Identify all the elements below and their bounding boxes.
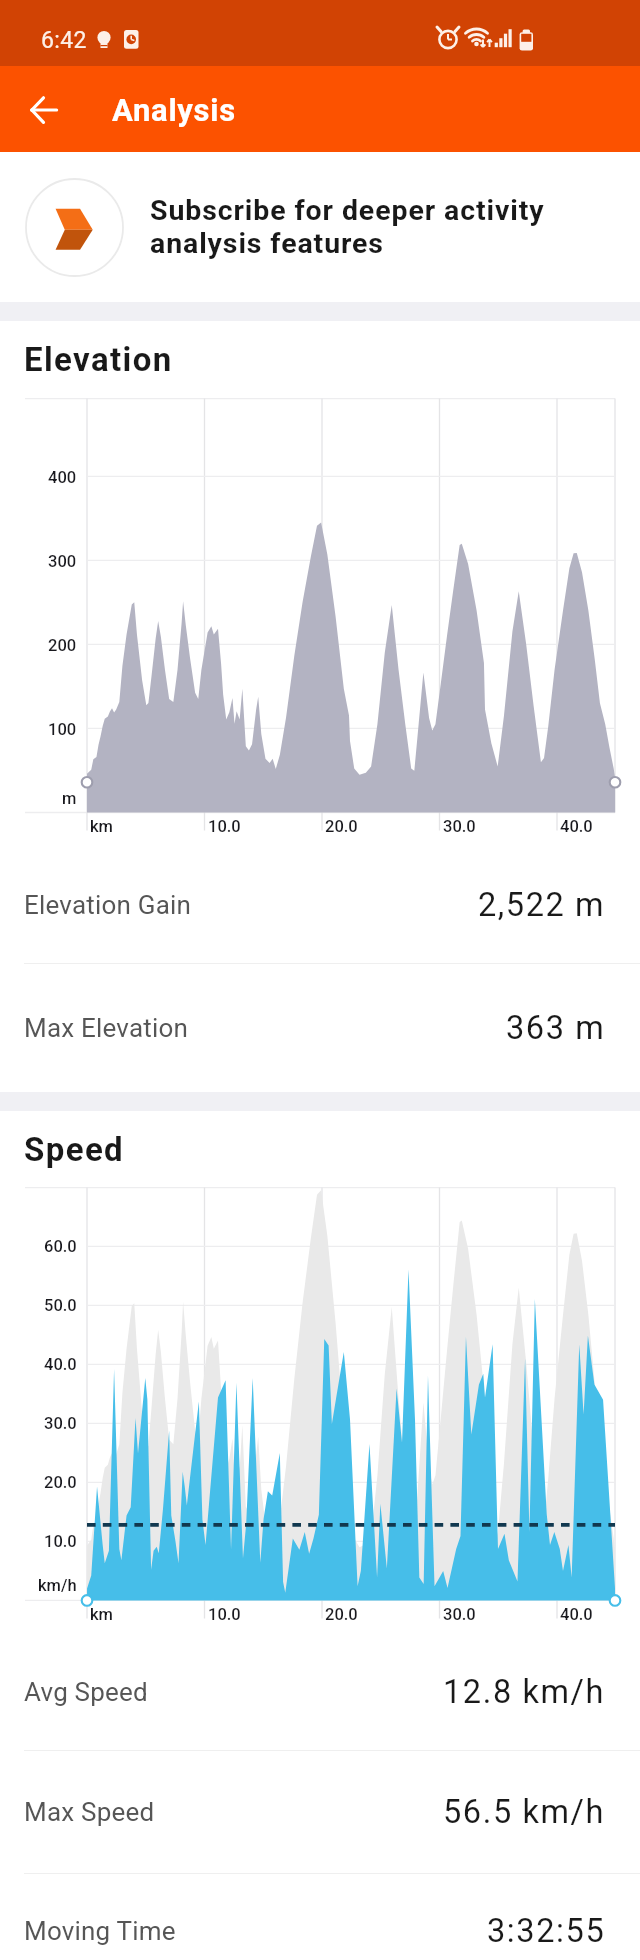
button[interactable]: Back [12,78,74,140]
staticText: Moving Time [24,1916,176,1946]
staticText: 20.0 [325,1605,358,1624]
staticText: 50.0 [44,1296,77,1315]
staticText: Max Elevation [24,1013,189,1043]
staticText: 30.0 [44,1414,77,1433]
staticText: 100 [48,720,77,739]
staticText: 300 [48,552,77,571]
button[interactable]: Elevation Gain [0,846,640,963]
staticText: Speed [24,1130,125,1169]
staticText: km [90,1605,113,1624]
staticText: 30.0 [443,817,476,836]
button[interactable]: Max Elevation [0,964,640,1092]
staticText: 363 m [506,1009,606,1047]
staticText: m [62,789,77,808]
staticText: analysis features [150,227,384,260]
button[interactable]: Avg Speed [0,1633,640,1750]
staticText: Elevation [24,340,173,379]
staticText: 60.0 [44,1237,77,1256]
staticText: 6:42 [41,27,87,54]
staticText: 20.0 [44,1473,77,1492]
staticText: 40.0 [560,1605,593,1624]
staticText: Avg Speed [24,1677,148,1707]
staticText: Subscribe for deeper activity [150,194,545,227]
staticText: 3:32:55 [487,1912,606,1950]
staticText: 40.0 [560,817,593,836]
staticText: Analysis [112,92,236,128]
staticText: 56.5 km/h [443,1793,606,1831]
button[interactable]: Moving Time [0,1874,640,1959]
staticText: Max Speed [24,1797,155,1827]
staticText: 10.0 [44,1532,77,1551]
button[interactable]: Subscribe for deeper activity [0,152,640,302]
staticText: 20.0 [325,817,358,836]
button[interactable]: Max Speed [0,1751,640,1873]
staticText: 40.0 [44,1355,77,1374]
staticText: km/h [38,1576,77,1595]
staticText: Elevation Gain [24,890,192,920]
staticText: 30.0 [443,1605,476,1624]
staticText: 200 [48,636,77,655]
staticText: 2,522 m [478,886,606,924]
staticText: 10.0 [208,817,241,836]
staticText: 10.0 [208,1605,241,1624]
staticText: 12.8 km/h [443,1673,606,1711]
staticText: km [90,817,113,836]
staticText: 400 [48,468,77,487]
